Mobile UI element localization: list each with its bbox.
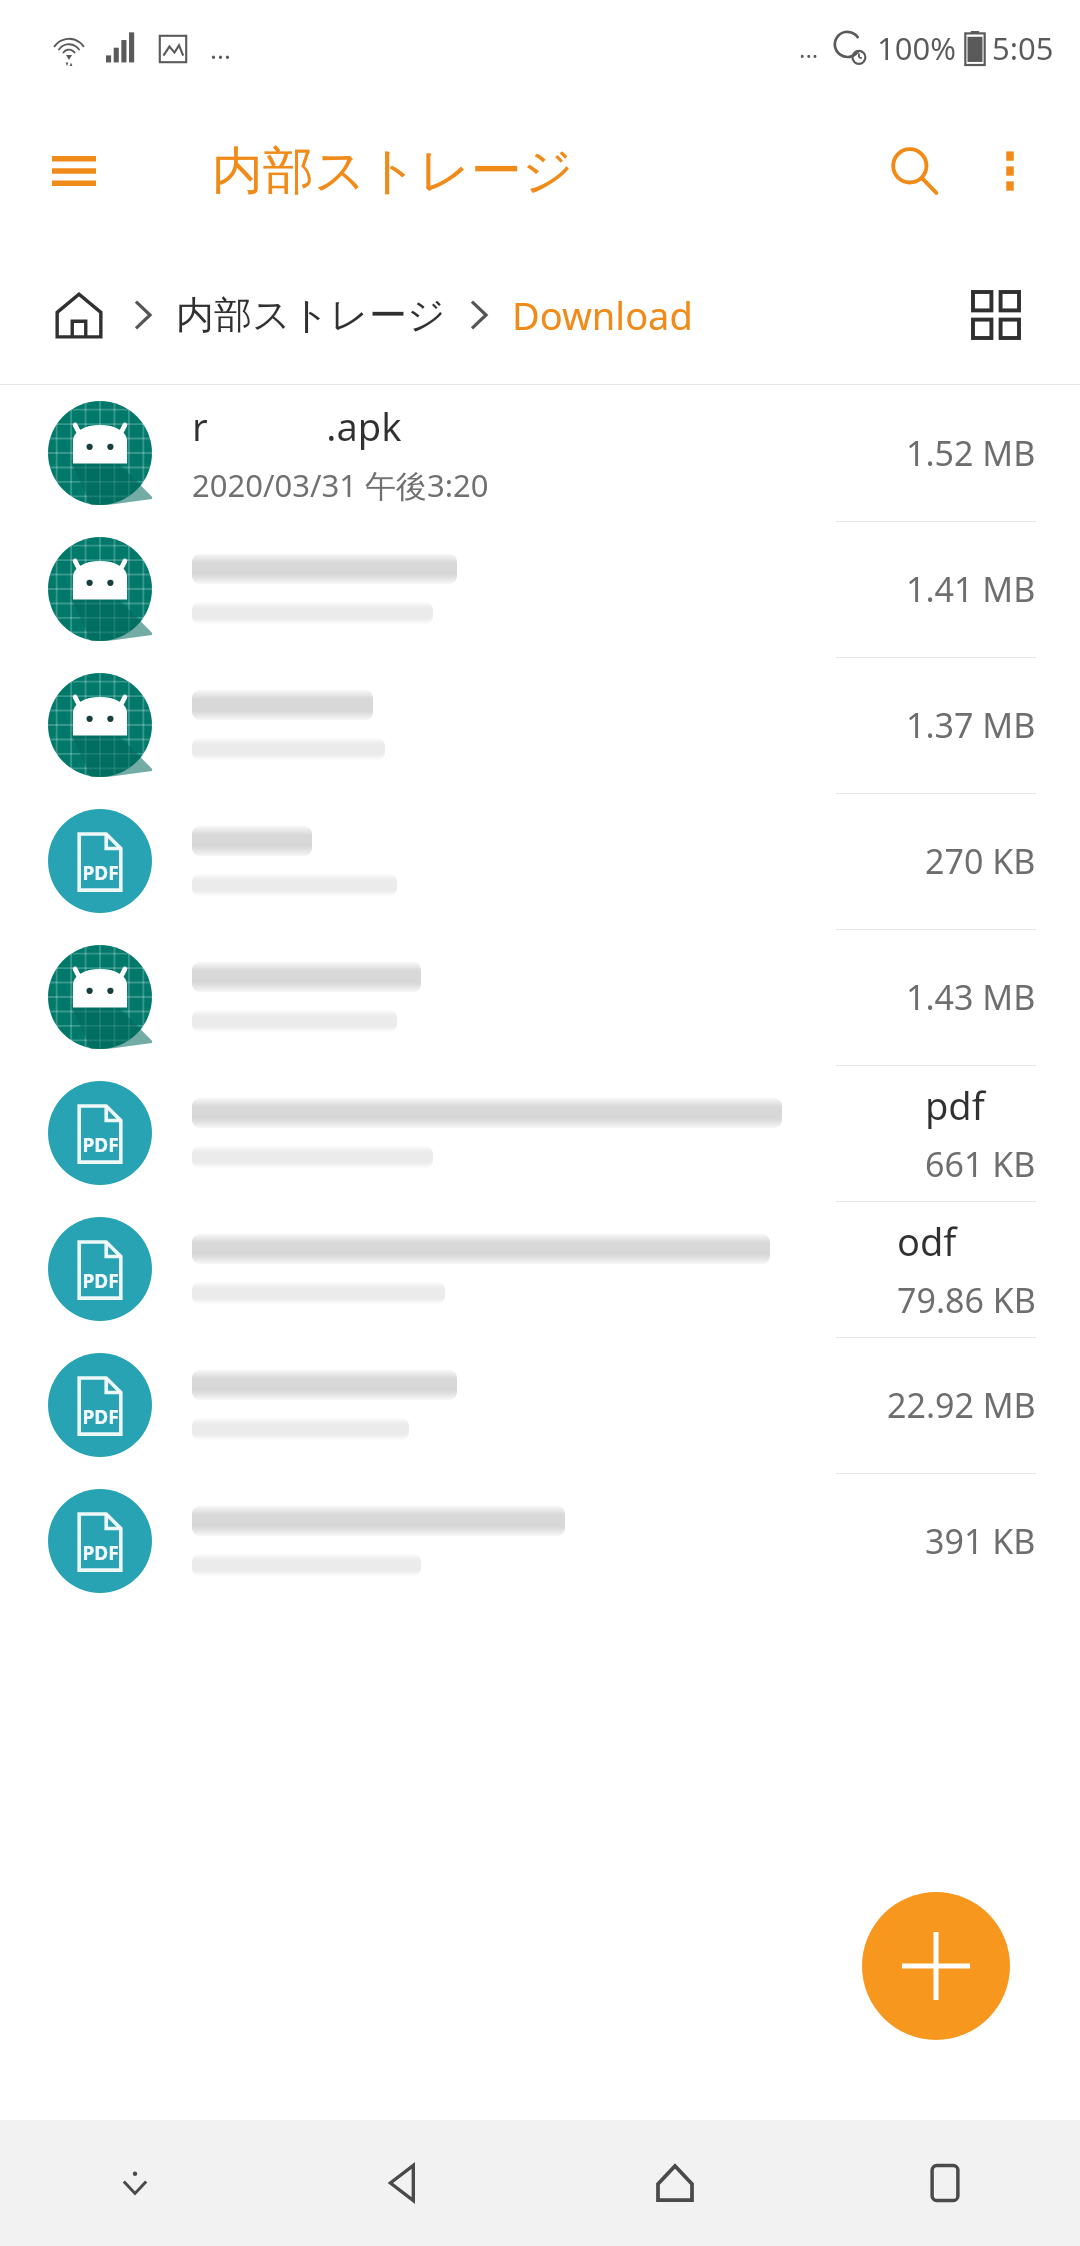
staticText: Download [512,289,693,341]
staticText: 391 KB [925,1518,1036,1564]
button[interactable]: Menu [36,133,112,209]
staticText: PDF [82,1404,119,1430]
staticText: 2020/03/31 午後3:20 [192,464,489,506]
button[interactable]: More options [962,123,1058,219]
button[interactable]: Back [270,2120,540,2246]
staticText: 1.43 MB [906,974,1036,1020]
staticText: 100% [877,27,956,69]
staticText: 1.37 MB [906,702,1036,748]
button[interactable]: PDF [0,1201,1080,1337]
staticText: PDF [82,1132,119,1158]
button[interactable]: Search [866,123,962,219]
button[interactable]: Grid view [956,275,1036,355]
staticText: 内部ストレージ [176,291,446,339]
button[interactable]: Home [48,284,110,346]
button[interactable]: r .apk [0,385,1080,521]
button[interactable]: 1.43 MB [0,929,1080,1065]
button[interactable]: PDF [0,793,1080,929]
button[interactable]: 1.37 MB [0,657,1080,793]
staticText: 5:05 [992,27,1054,69]
staticText: PDF [82,1268,119,1294]
staticText: pdf [925,1079,985,1131]
staticText: 79.86 KB [897,1277,1036,1323]
staticText: odf [897,1215,957,1267]
staticText: 内部ストレージ [212,139,574,203]
staticText: 661 KB [925,1141,1036,1187]
button[interactable]: Download [512,289,693,341]
button[interactable]: PDF [0,1473,1080,1609]
staticText: ... [210,31,231,66]
staticText: r .apk [192,400,402,452]
button[interactable]: Add [862,1892,1010,2040]
button[interactable]: 内部ストレージ [176,291,446,339]
staticText: PDF [82,1540,119,1566]
staticText: ... [799,32,819,65]
button[interactable]: Recents [810,2120,1080,2246]
staticText: PDF [82,860,119,886]
staticText: 22.92 MB [887,1382,1036,1428]
button[interactable]: Hide keyboard [0,2120,270,2246]
button[interactable]: 1.41 MB [0,521,1080,657]
button[interactable]: PDF [0,1337,1080,1473]
button[interactable]: Home [540,2120,810,2246]
staticText: 1.41 MB [906,566,1036,612]
button[interactable]: PDF [0,1065,1080,1201]
staticText: 270 KB [925,838,1036,884]
staticText: 1.52 MB [906,430,1036,476]
